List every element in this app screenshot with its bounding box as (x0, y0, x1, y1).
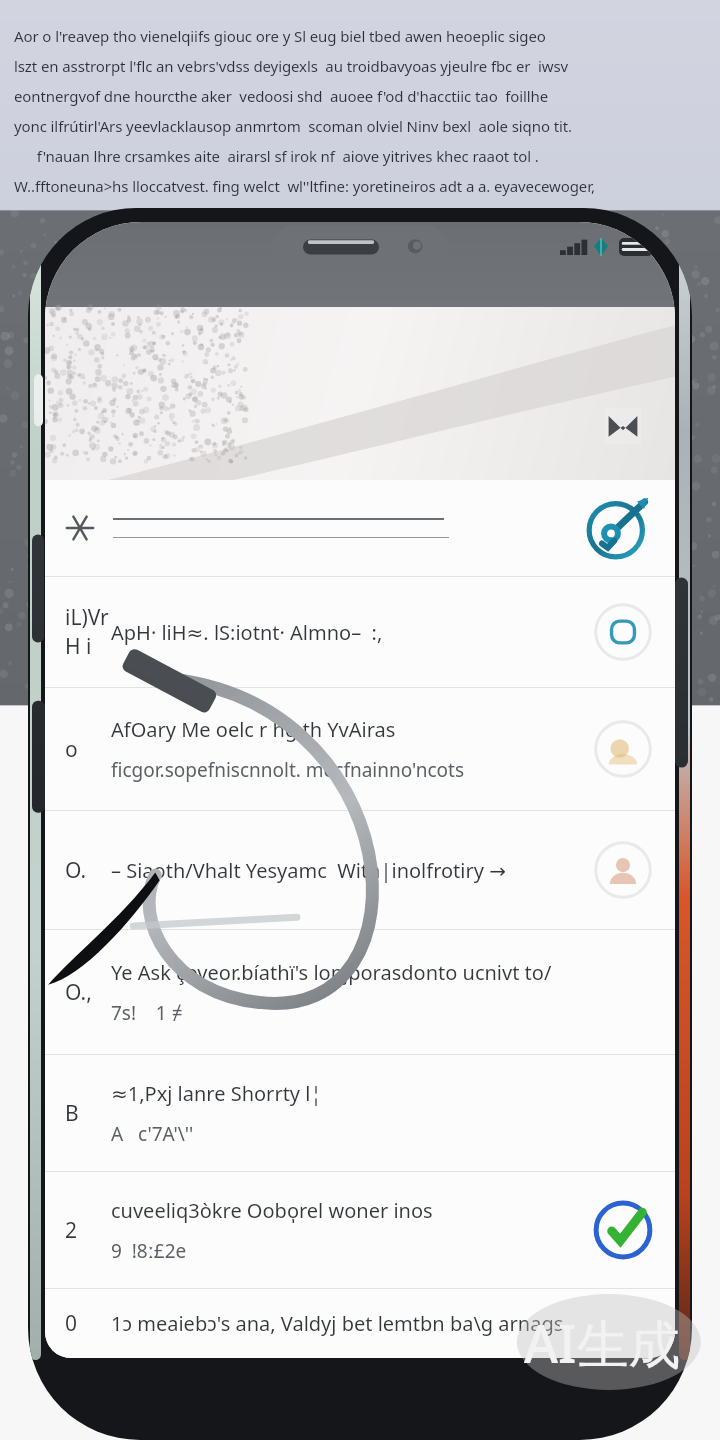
staticText: o (65, 735, 111, 764)
staticText: ficgor.sopefniscnnolt. mecfnainno'ncots (111, 757, 465, 783)
button[interactable]: B (45, 1055, 675, 1171)
staticText: 2 (65, 1216, 111, 1245)
staticText: O., (65, 978, 111, 1007)
staticText: 1ɔ meaiebɔ's ana, Valdyj bet lemtbn ba\g… (111, 1310, 564, 1337)
staticText: B (65, 1099, 111, 1128)
staticText: iL)VrH i (65, 603, 111, 661)
staticText: Ye Ask çoveor.bíathï's lonjporasdonto uc… (111, 959, 587, 986)
staticText: ApH· liH≈. lS:iotnt· Almno– :, (111, 619, 383, 646)
staticText: AfOary Me oelc r hg th YvAiras (111, 716, 396, 743)
button[interactable]: Mail (605, 408, 641, 444)
button[interactable]: Compose (45, 480, 675, 576)
staticText: lszt en asstrorpt l'flc an vebrs'vdss de… (14, 56, 569, 76)
staticText: A c'7A'\'' (111, 1121, 194, 1147)
staticText: O. (65, 856, 111, 885)
staticText: 7s! 1 ≠ (111, 1000, 183, 1026)
staticText: ≈1,Pxj lanre Shorrty l¦ (111, 1080, 322, 1107)
button[interactable]: Compose (581, 491, 655, 565)
staticText: AI生成 (524, 1307, 681, 1378)
button[interactable]: 0 (45, 1289, 675, 1358)
button[interactable]: O., (45, 930, 675, 1054)
staticText: 0 (65, 1309, 111, 1338)
button[interactable]: iL)VrH i (45, 577, 675, 687)
button[interactable]: O. (45, 811, 675, 929)
staticText: f'nauan lhre crsamkes aite airarsl sf ir… (14, 146, 539, 166)
staticText: 9 !8ː£2e (111, 1238, 187, 1264)
staticText: yonc ilfrútirl'Ars yeevlacklausop anmrto… (14, 116, 572, 136)
button[interactable]: o (45, 688, 675, 810)
staticText: cuveeliq3òkre Oobٖorel woner inos (111, 1197, 433, 1224)
staticText: – Siaoth/Vhalt Yesyamc With|inolfrotiry … (111, 857, 506, 884)
button[interactable]: 2 (45, 1172, 675, 1288)
staticText: W..fftoneuna>hs lloccatvest. fing welct … (14, 176, 595, 196)
staticText: Aor o l'reavep tho vienelqiifs giouc ore… (14, 26, 546, 46)
staticText: eontnergvof dne hourcthe aker vedoosi sh… (14, 86, 549, 106)
